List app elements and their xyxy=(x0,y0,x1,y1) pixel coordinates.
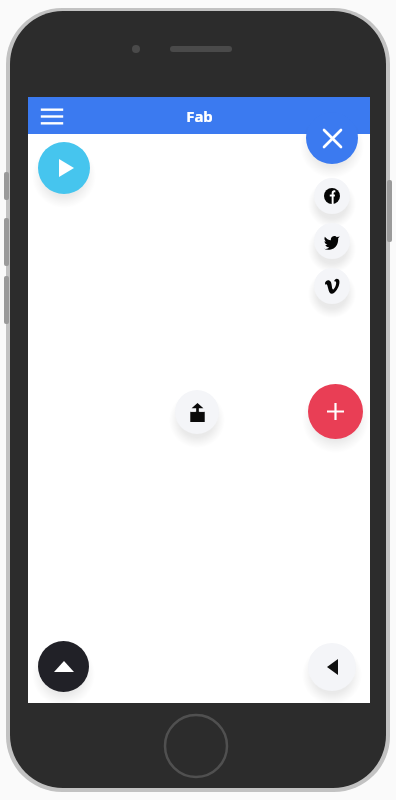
button[interactable]: Share xyxy=(175,390,219,434)
button[interactable]: Back xyxy=(308,643,356,691)
button[interactable]: Play xyxy=(38,142,90,194)
staticText: Fab xyxy=(186,106,213,126)
button[interactable]: Add xyxy=(308,384,363,439)
button[interactable]: Open navigation menu xyxy=(36,100,68,132)
button[interactable]: Share on Vimeo xyxy=(314,268,350,304)
button[interactable]: Scroll up xyxy=(38,641,89,692)
button[interactable]: Share on Facebook xyxy=(314,178,350,214)
button[interactable]: Share on Twitter xyxy=(314,223,350,259)
button[interactable]: Close menu xyxy=(306,112,358,164)
